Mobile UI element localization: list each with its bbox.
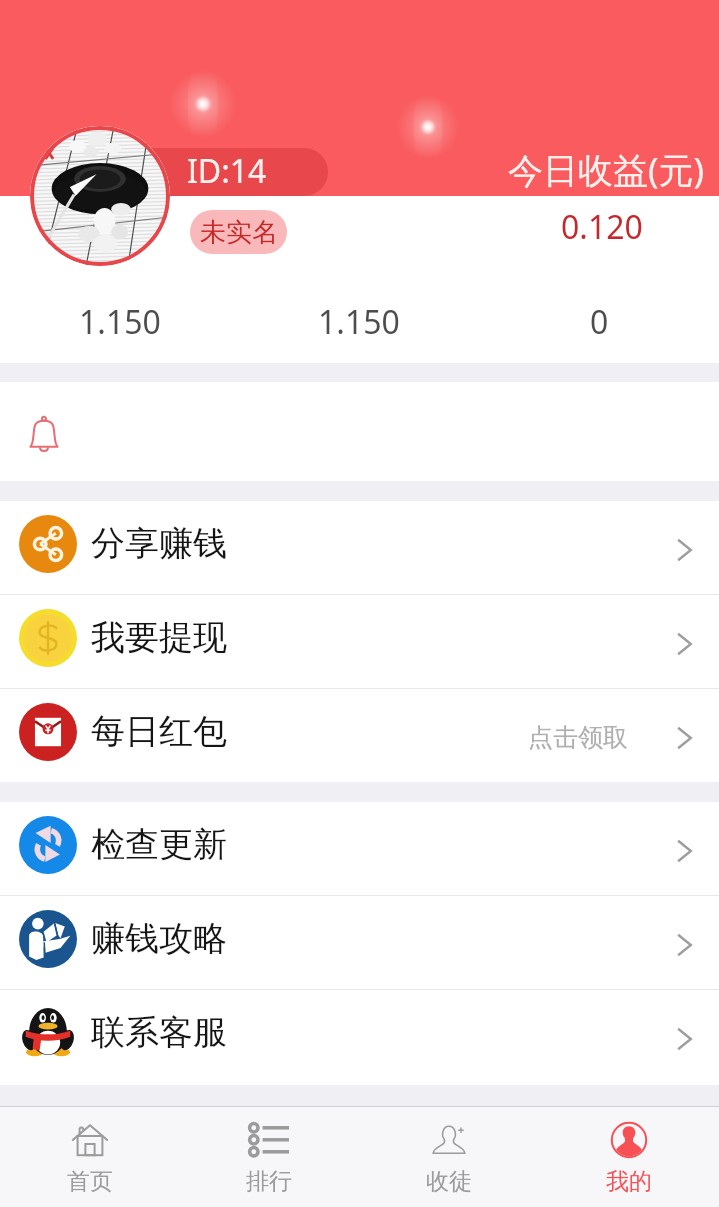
button[interactable]: Notifications [0,382,719,481]
staticText: 分享赚钱 [91,522,227,565]
staticText: 1.150 [79,300,161,344]
staticText: 我的 [606,1167,652,1196]
button[interactable]: 排行 [179,1107,359,1207]
staticText: 联系客服 [91,1011,227,1054]
staticText: 每日红包 [91,710,227,753]
staticText: 我要提现 [91,616,227,659]
staticText: 赚钱攻略 [91,917,227,960]
button[interactable]: 赚钱攻略 [0,896,719,989]
staticText: 未实名 [200,216,278,249]
staticText: 检查更新 [91,823,227,866]
staticText: 排行 [246,1167,292,1196]
button[interactable]: 收徒 [359,1107,539,1207]
button[interactable]: 联系客服 [0,990,719,1083]
staticText: 首页 [67,1167,113,1196]
staticText: 0 [590,300,609,344]
other: Notifications [20,409,68,457]
button[interactable]: 检查更新 [0,802,719,895]
button[interactable]: 分享赚钱 [0,501,719,594]
button[interactable]: 首页 [0,1107,179,1207]
staticText: 1.150 [318,300,400,344]
staticText: ID:14 [187,149,267,193]
button[interactable]: 每日红包 [0,689,719,782]
staticText: 点击领取 [528,722,628,753]
button[interactable]: 未实名 [190,210,287,254]
staticText: 今日收益(元) [508,146,705,194]
staticText: 0.120 [561,205,643,249]
button[interactable]: ID:14 [145,148,328,196]
button[interactable]: 我要提现 [0,595,719,688]
button[interactable]: 我的 [539,1107,719,1207]
staticText: 收徒 [426,1167,472,1196]
